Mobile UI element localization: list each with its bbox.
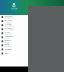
button[interactable]: Documents — [0, 27, 28, 31]
staticText: Favourites — [5, 35, 14, 37]
button[interactable]: Reports — [0, 39, 28, 43]
button[interactable]: Overview — [0, 15, 28, 19]
staticText: Last 7 days — [5, 33, 13, 35]
staticText: Monthly — [5, 41, 10, 43]
button[interactable]: Messages — [0, 19, 28, 23]
staticText: appname — [10, 8, 17, 10]
staticText: Updated now — [5, 17, 14, 19]
staticText: Help — [5, 53, 8, 54]
staticText: Shared folder — [5, 29, 15, 31]
staticText: Schedule — [5, 23, 12, 25]
button[interactable]: Favourites — [0, 35, 28, 39]
button[interactable]: Schedule — [0, 23, 28, 27]
staticText: Messages — [5, 19, 13, 21]
staticText: Settings — [5, 48, 12, 50]
staticText: Documents — [5, 27, 14, 29]
staticText: Team — [5, 44, 9, 45]
staticText: 3 events today — [5, 25, 15, 27]
staticText: Overview — [5, 15, 12, 17]
staticText: Activity — [5, 31, 11, 33]
button[interactable]: Activity — [0, 31, 28, 35]
staticText: 5 members — [5, 45, 13, 47]
button[interactable]: Help — [0, 51, 28, 55]
button[interactable]: Team — [0, 43, 28, 47]
button[interactable]: Settings — [0, 47, 28, 51]
staticText: Reports — [5, 40, 12, 41]
staticText: 12 unread — [5, 21, 13, 23]
staticText: 8 saved — [5, 37, 11, 39]
